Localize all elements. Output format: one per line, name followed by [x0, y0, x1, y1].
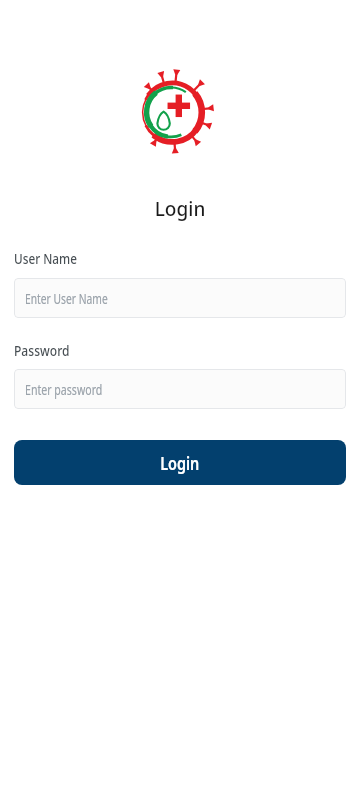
- staticText: Enter User Name: [25, 288, 108, 308]
- button[interactable]: Enter password: [14, 369, 346, 409]
- staticText: Password: [14, 340, 69, 360]
- button[interactable]: Login: [14, 440, 346, 485]
- staticText: User Name: [14, 248, 78, 268]
- staticText: Login: [160, 451, 200, 475]
- button[interactable]: Enter User Name: [14, 278, 346, 318]
- staticText: Login: [0, 196, 360, 222]
- staticText: Enter password: [25, 379, 102, 399]
